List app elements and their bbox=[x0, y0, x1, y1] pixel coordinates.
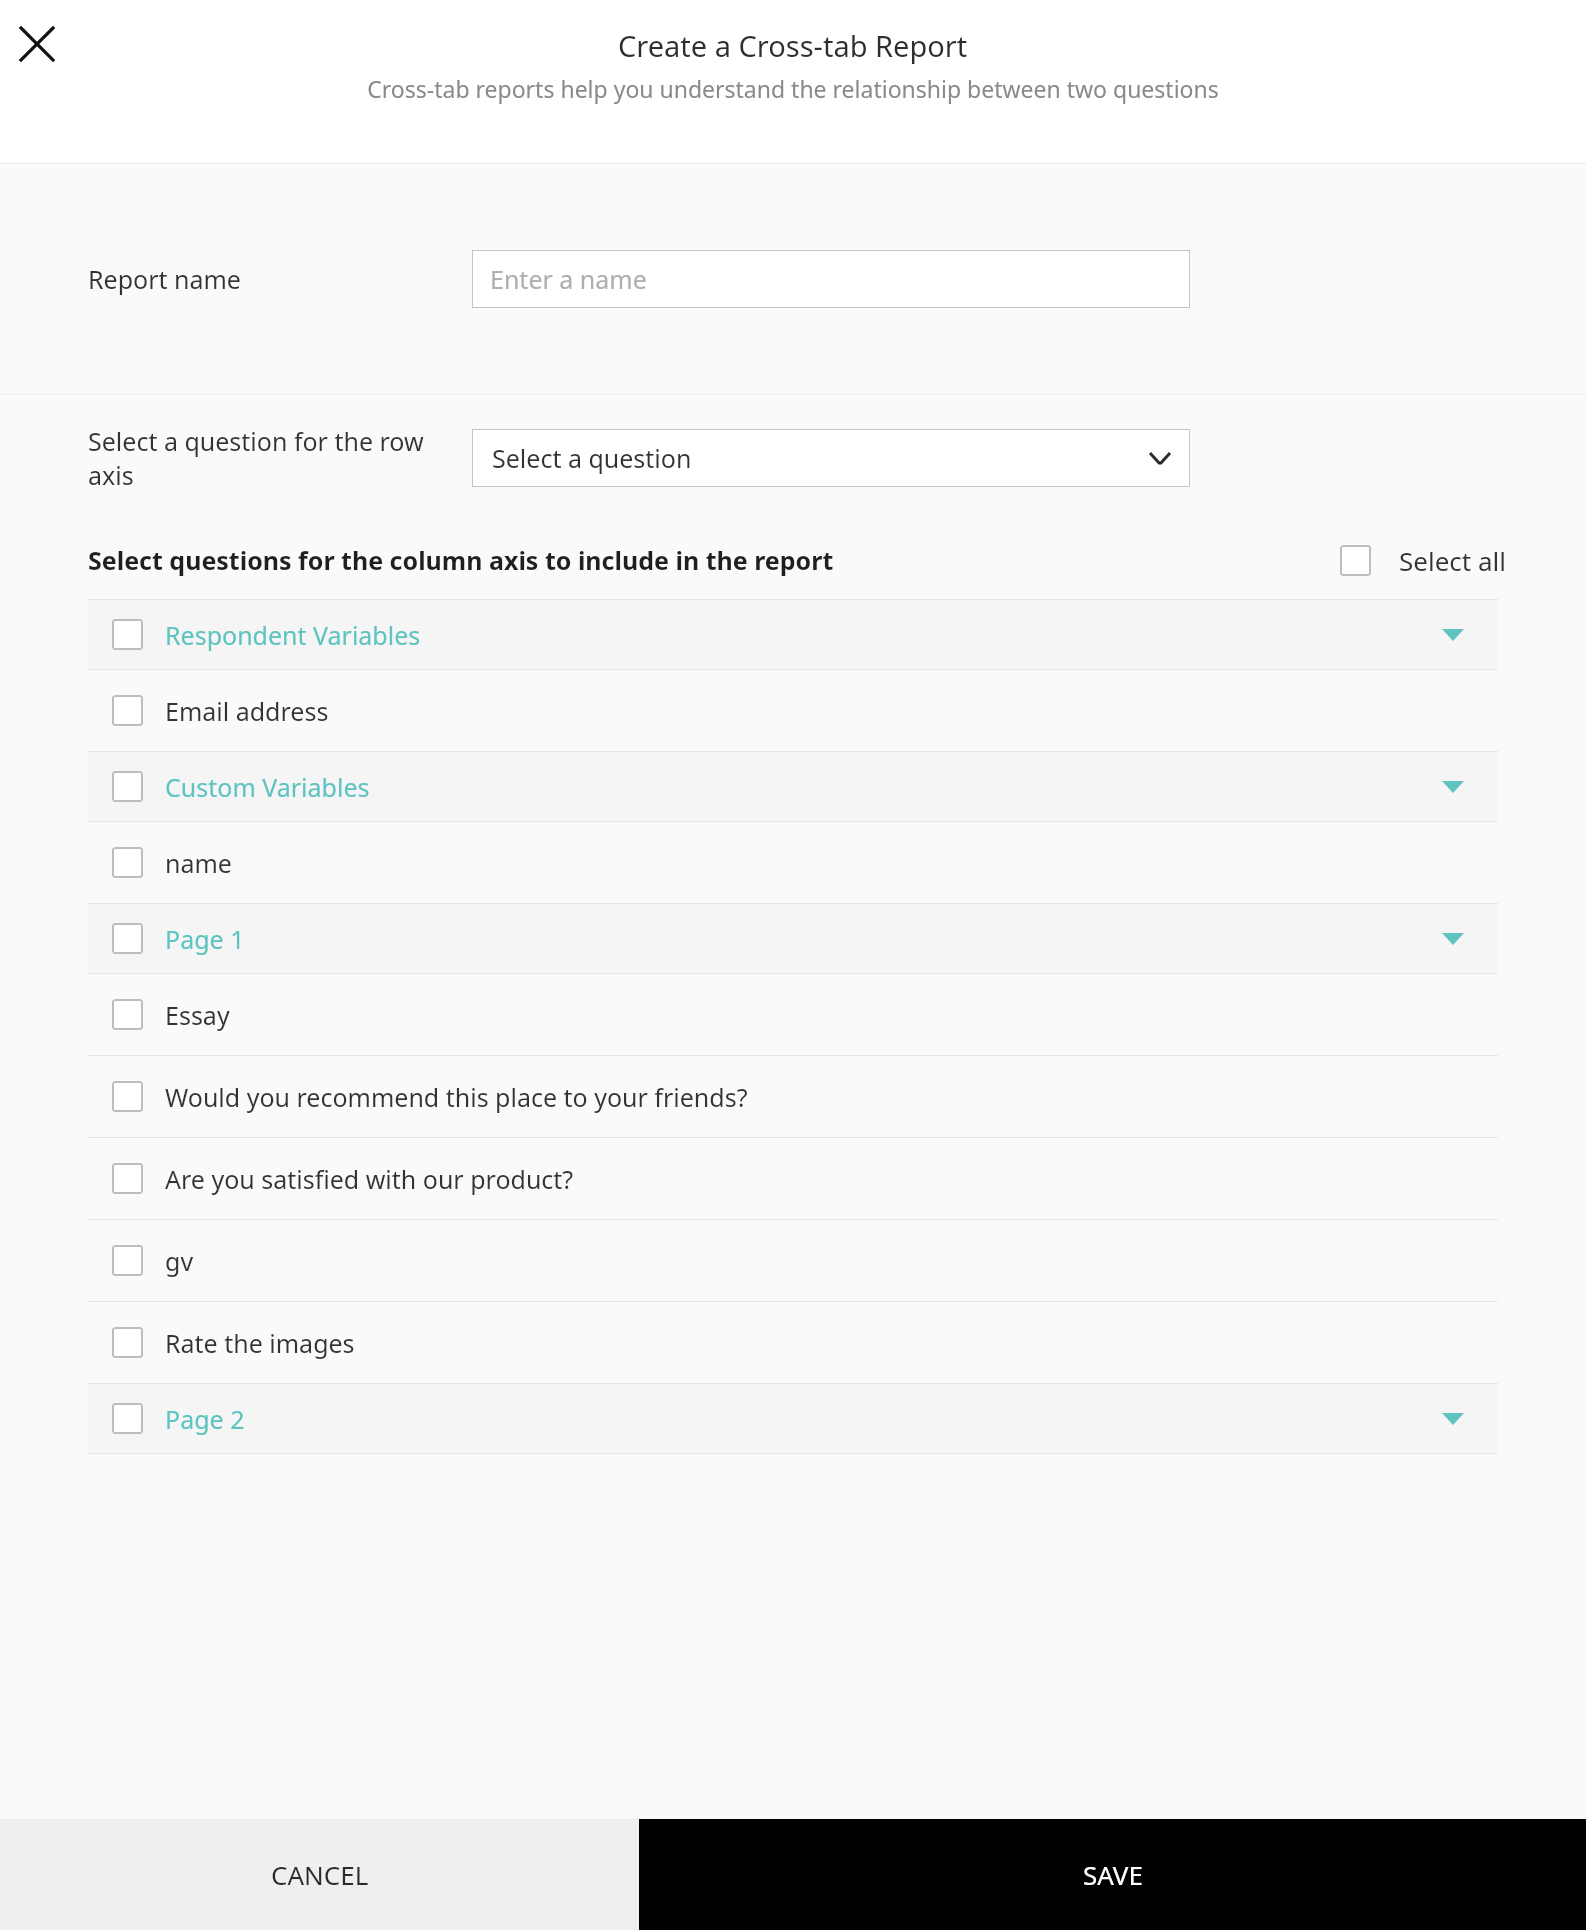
staticText: Select questions for the column axis to … bbox=[88, 543, 834, 577]
staticText: name bbox=[165, 846, 232, 880]
button[interactable]: Would you recommend this place to your f… bbox=[88, 1056, 1498, 1137]
staticText: Respondent Variables bbox=[165, 618, 421, 652]
staticText: Page 2 bbox=[165, 1402, 245, 1436]
button[interactable]: Enter a name bbox=[472, 250, 1190, 308]
button[interactable]: SAVE bbox=[639, 1819, 1586, 1930]
button[interactable]: name bbox=[88, 822, 1498, 903]
button[interactable]: Select a question bbox=[472, 429, 1190, 487]
staticText: Rate the images bbox=[165, 1326, 355, 1360]
button[interactable]: Respondent Variables bbox=[88, 600, 1498, 669]
staticText: Enter a name bbox=[490, 262, 647, 296]
button[interactable]: Page 1 bbox=[88, 904, 1498, 973]
staticText: SAVE bbox=[1083, 1857, 1143, 1892]
staticText: axis bbox=[88, 458, 134, 492]
button[interactable]: Select all bbox=[1340, 543, 1506, 578]
button[interactable]: Rate the images bbox=[88, 1302, 1498, 1383]
staticText: Are you satisfied with our product? bbox=[165, 1162, 574, 1196]
staticText: Report name bbox=[88, 262, 241, 296]
staticText: Select a question for the row bbox=[88, 424, 424, 458]
staticText: Create a Cross-tab Report bbox=[618, 26, 968, 65]
staticText: Select all bbox=[1399, 543, 1506, 578]
staticText: Would you recommend this place to your f… bbox=[165, 1080, 748, 1114]
button[interactable]: Are you satisfied with our product? bbox=[88, 1138, 1498, 1219]
staticText: Custom Variables bbox=[165, 770, 370, 804]
staticText: Essay bbox=[165, 998, 230, 1032]
button[interactable]: Close bbox=[14, 21, 59, 66]
button[interactable]: Email address bbox=[88, 670, 1498, 751]
staticText: CANCEL bbox=[271, 1857, 369, 1892]
button[interactable]: Page 2 bbox=[88, 1384, 1498, 1453]
button[interactable]: gv bbox=[88, 1220, 1498, 1301]
staticText: Select a question bbox=[492, 441, 692, 475]
staticText: Page 1 bbox=[165, 922, 245, 956]
staticText: Email address bbox=[165, 694, 329, 728]
button[interactable]: CANCEL bbox=[0, 1819, 639, 1930]
staticText: Cross-tab reports help you understand th… bbox=[367, 73, 1219, 104]
button[interactable]: Custom Variables bbox=[88, 752, 1498, 821]
staticText: gv bbox=[165, 1244, 194, 1278]
button[interactable]: Essay bbox=[88, 974, 1498, 1055]
